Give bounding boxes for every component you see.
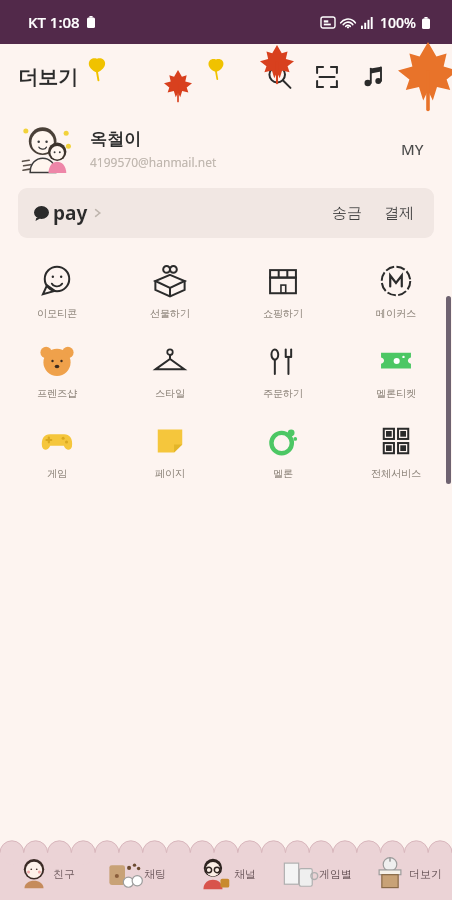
- staticText: 옥철이: [90, 129, 141, 150]
- staticText: 4199570@hanmail.net: [90, 154, 217, 170]
- staticText: 채팅: [144, 867, 166, 881]
- staticText: 쇼핑하기: [263, 307, 303, 320]
- button[interactable]: 채팅: [91, 848, 182, 900]
- button[interactable]: Settings: [408, 62, 438, 92]
- staticText: 전체서비스: [371, 467, 421, 480]
- button[interactable]: 채널: [182, 848, 272, 900]
- button[interactable]: 옥철이: [0, 110, 452, 188]
- button[interactable]: 친구: [0, 848, 91, 900]
- button[interactable]: 쇼핑하기: [226, 252, 339, 332]
- staticText: 페이지: [155, 467, 185, 480]
- button[interactable]: MY: [391, 133, 434, 165]
- button[interactable]: 더보기: [18, 65, 78, 90]
- button[interactable]: 메이커스: [339, 252, 452, 332]
- staticText: 이모티콘: [37, 307, 77, 320]
- button[interactable]: 송금: [326, 198, 368, 229]
- staticText: MY: [401, 139, 424, 159]
- staticText: 선물하기: [150, 307, 190, 320]
- staticText: KT 1:08: [28, 12, 80, 32]
- staticText: 멜론: [273, 467, 293, 480]
- staticText: 결제: [384, 204, 414, 223]
- staticText: 게임: [47, 467, 67, 480]
- button[interactable]: pay: [18, 188, 434, 238]
- staticText: 친구: [53, 867, 75, 881]
- staticText: 송금: [332, 204, 362, 223]
- staticText: 멜론티켓: [376, 387, 416, 400]
- button[interactable]: 이모티콘: [0, 252, 113, 332]
- staticText: 스타일: [155, 387, 185, 400]
- button[interactable]: 스타일: [113, 332, 226, 412]
- button[interactable]: 선물하기: [113, 252, 226, 332]
- button[interactable]: 게임: [0, 412, 113, 492]
- button[interactable]: 멜론: [226, 412, 339, 492]
- staticText: pay: [53, 200, 88, 226]
- button[interactable]: Music: [360, 62, 390, 92]
- staticText: 주문하기: [263, 387, 303, 400]
- button[interactable]: 더보기: [362, 848, 452, 900]
- button[interactable]: 페이지: [113, 412, 226, 492]
- button[interactable]: 주문하기: [226, 332, 339, 412]
- button[interactable]: 결제: [378, 198, 420, 229]
- staticText: 메이커스: [376, 307, 416, 320]
- staticText: 채널: [234, 867, 256, 881]
- button[interactable]: 프렌즈샵: [0, 332, 113, 412]
- staticText: 더보기: [409, 867, 442, 881]
- button[interactable]: Search: [264, 62, 294, 92]
- staticText: 100%: [380, 13, 416, 32]
- button[interactable]: 게임별: [272, 848, 362, 900]
- button[interactable]: 전체서비스: [339, 412, 452, 492]
- button[interactable]: 멜론티켓: [339, 332, 452, 412]
- staticText: 프렌즈샵: [37, 387, 77, 400]
- button[interactable]: Code scan: [312, 62, 342, 92]
- staticText: 게임별: [319, 867, 352, 881]
